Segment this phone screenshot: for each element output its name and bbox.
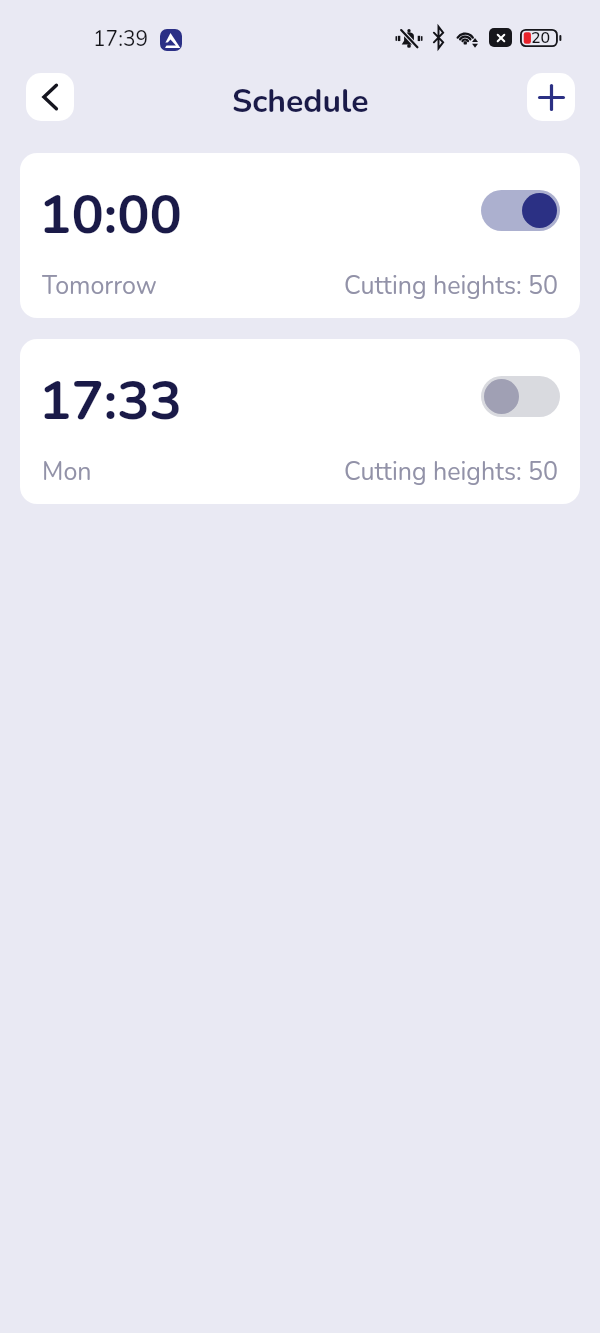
staticText: 10:00 <box>39 178 182 252</box>
button[interactable]: Schedule disabled <box>481 376 560 417</box>
button[interactable]: 10:00 <box>20 153 580 318</box>
staticText: Cutting heights: 50 <box>344 269 559 303</box>
button[interactable]: 17:33 <box>20 339 580 504</box>
staticText: Cutting heights: 50 <box>344 455 559 489</box>
button[interactable]: Schedule enabled <box>481 190 560 231</box>
staticText: Tomorrow <box>42 269 157 303</box>
staticText: Mon <box>42 455 92 489</box>
staticText: 17:33 <box>39 364 182 438</box>
staticText: 17:39 <box>93 25 149 54</box>
staticText: Schedule <box>232 80 369 124</box>
button[interactable]: Add schedule <box>527 73 575 121</box>
button[interactable]: Back <box>26 73 74 121</box>
staticText: 20 <box>531 27 551 49</box>
